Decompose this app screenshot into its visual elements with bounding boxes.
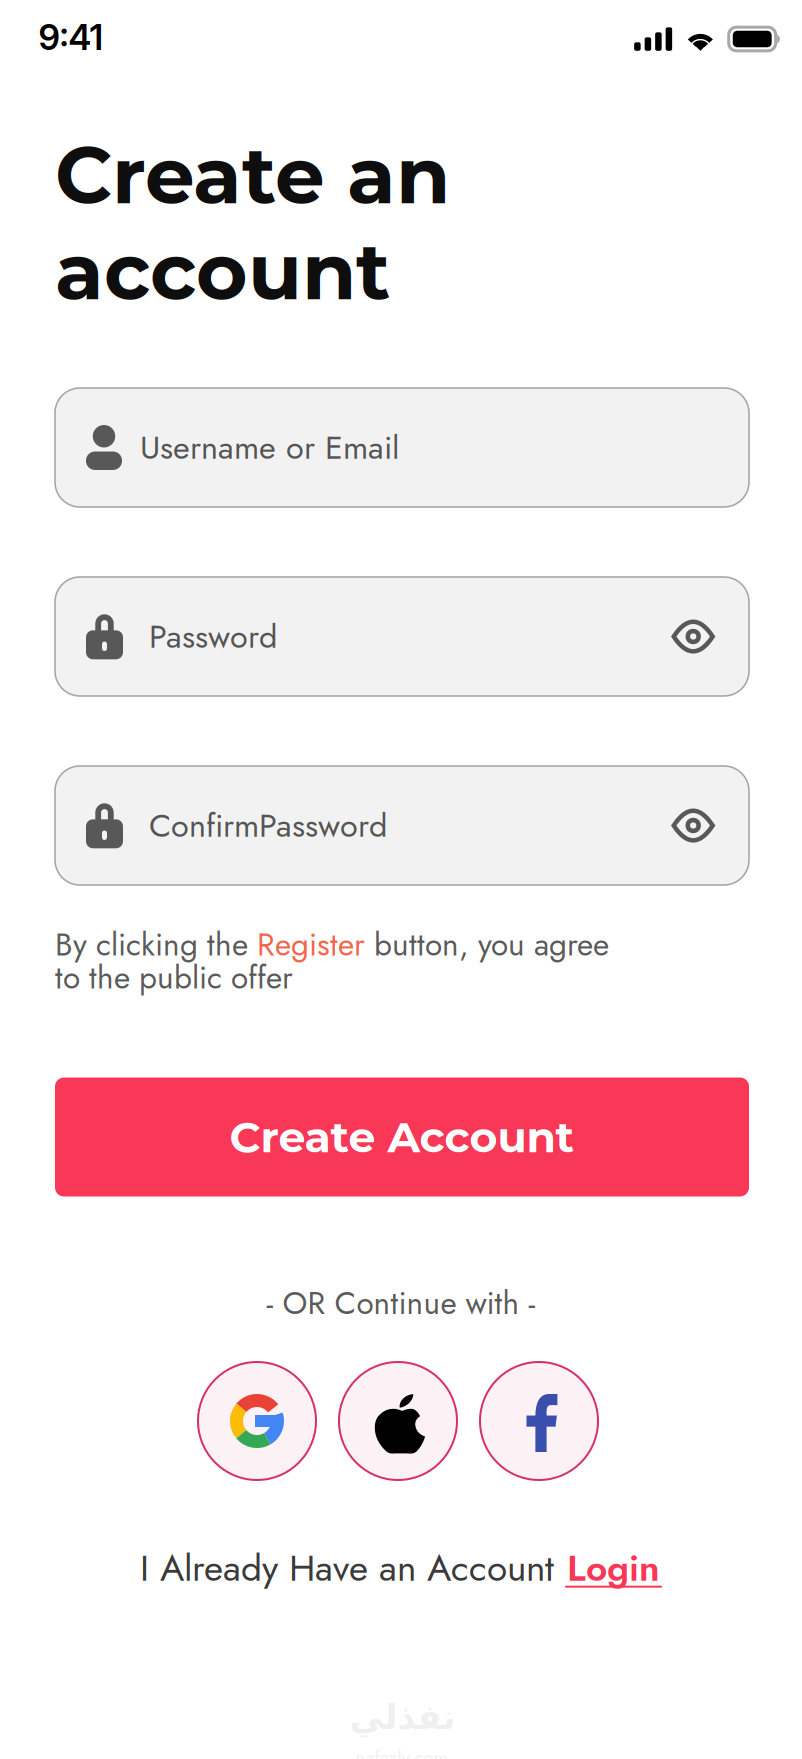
staticText: to the public offer [55, 955, 293, 1000]
staticText: - OR Continue with - [266, 1280, 535, 1326]
staticText: I Already Have an Account [140, 1541, 565, 1595]
staticText: account [55, 223, 390, 319]
staticText: Login [567, 1541, 660, 1595]
button[interactable]: Continue with Apple [339, 1362, 457, 1480]
staticText: Register [257, 922, 365, 967]
staticText: Create Account [229, 1111, 574, 1163]
staticText: Create an [55, 127, 450, 223]
staticText: ConfirmPassword [149, 802, 387, 849]
staticText: 9:41 [38, 16, 103, 58]
button[interactable]: Create Account [55, 1077, 749, 1196]
button[interactable]: Show password [671, 619, 715, 654]
staticText: Password [149, 613, 277, 660]
button[interactable]: Continue with Google [198, 1362, 316, 1480]
staticText: button, you agree [365, 922, 609, 967]
staticText: By clicking the [55, 922, 257, 967]
button[interactable]: I Already Have an Account [140, 1541, 662, 1595]
button[interactable]: Show confirm password [671, 808, 715, 843]
button[interactable]: Continue with Facebook [480, 1362, 598, 1480]
staticText: Username or Email [140, 424, 399, 471]
staticText: nafezly.com [355, 1744, 448, 1759]
staticText: نفذلي [349, 1697, 455, 1737]
